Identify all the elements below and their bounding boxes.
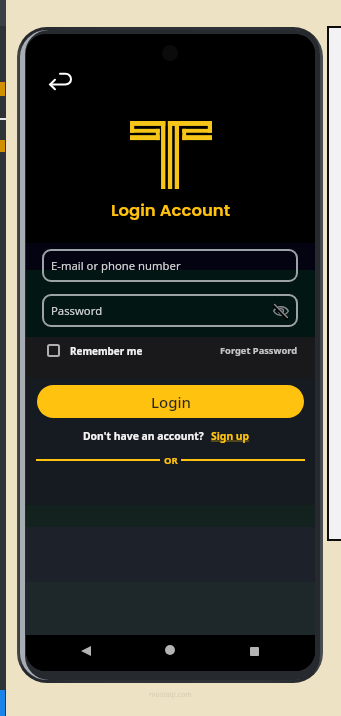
staticText: mostaql.com xyxy=(149,690,192,700)
button[interactable]: E-mail or phone number xyxy=(42,249,298,282)
button[interactable]: Home xyxy=(159,639,181,661)
button[interactable]: Back xyxy=(45,65,75,95)
staticText: E-mail or phone number xyxy=(51,258,181,273)
button[interactable]: Show password xyxy=(270,300,292,322)
staticText: Remember me xyxy=(70,344,143,357)
button[interactable]: Back xyxy=(75,640,97,662)
button[interactable]: Sign up xyxy=(211,429,250,443)
staticText: OR xyxy=(164,454,178,467)
staticText: Forget Password xyxy=(220,344,298,356)
staticText: Login xyxy=(151,392,191,412)
staticText: Password xyxy=(51,303,103,318)
button[interactable]: Login xyxy=(37,385,304,418)
button[interactable]: Forget Password xyxy=(220,344,298,356)
staticText: Login Account xyxy=(111,199,231,222)
button[interactable]: Password xyxy=(42,294,298,327)
staticText: Don't have an account? xyxy=(83,429,204,443)
button[interactable]: Recent apps xyxy=(243,640,265,662)
button[interactable]: Remember me xyxy=(47,344,143,357)
